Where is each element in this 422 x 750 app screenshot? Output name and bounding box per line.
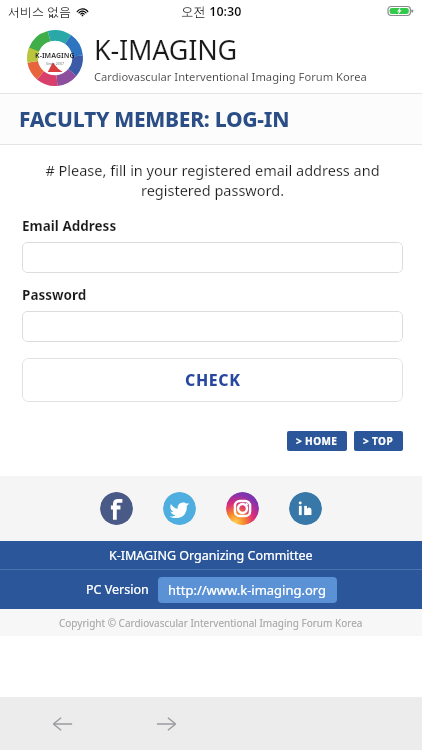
button[interactable]: [22, 242, 403, 273]
staticText: Since 2007: [46, 61, 65, 66]
staticText: K-IMAGING: [94, 31, 237, 68]
staticText: FACULTY MEMBER: LOG-IN: [19, 105, 290, 134]
button[interactable]: > TOP: [354, 431, 403, 451]
staticText: PC Version: [86, 581, 149, 598]
staticText: 오전 10:30: [181, 3, 242, 20]
staticText: K-IMAGING Organizing Committee: [109, 547, 313, 564]
button[interactable]: http://www.k-imaging.org: [158, 577, 337, 603]
staticText: Cardiovascular Interventional Imaging Fo…: [94, 69, 367, 84]
button[interactable]: K-IMAGING Organizing Committee: [0, 541, 422, 569]
staticText: K-IMAGING: [35, 51, 75, 61]
staticText: > TOP: [363, 434, 394, 448]
button[interactable]: Forward: [145, 703, 187, 745]
button[interactable]: LinkedIn: [289, 492, 322, 525]
button[interactable]: Instagram: [226, 492, 259, 525]
button[interactable]: > HOME: [287, 431, 347, 451]
staticText: CHECK: [185, 369, 241, 391]
staticText: Email Address: [22, 217, 117, 235]
staticText: Password: [22, 286, 87, 304]
staticText: http://www.k-imaging.org: [168, 581, 327, 599]
staticText: # Please, fill in your registered email …: [34, 160, 391, 200]
button[interactable]: Twitter: [163, 492, 196, 525]
staticText: 서비스 없음: [8, 3, 72, 19]
staticText: > HOME: [296, 434, 338, 448]
button[interactable]: CHECK: [22, 358, 403, 402]
button[interactable]: [22, 311, 403, 342]
button[interactable]: Facebook: [100, 492, 133, 525]
staticText: Copyright © Cardiovascular Interventiona…: [59, 616, 363, 630]
button[interactable]: Back: [42, 703, 84, 745]
